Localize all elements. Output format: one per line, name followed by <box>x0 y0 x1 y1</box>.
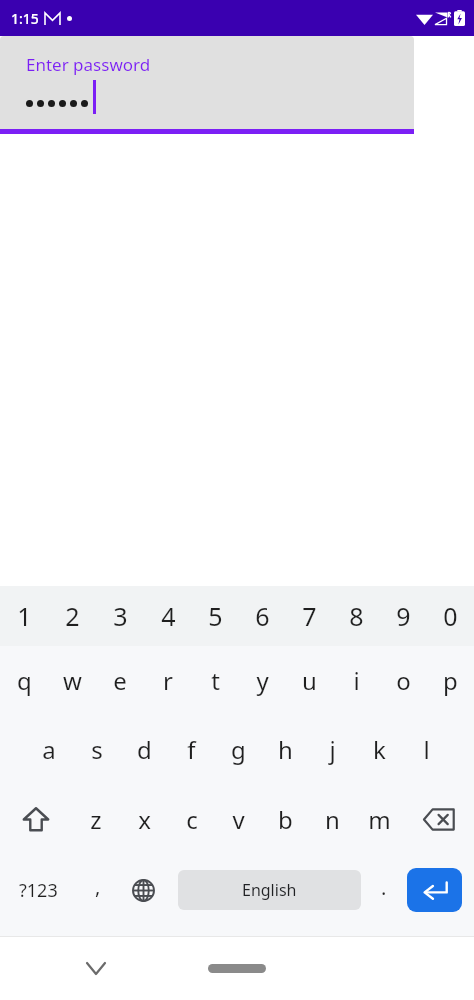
button[interactable]: q <box>0 646 48 714</box>
button[interactable]: 1 <box>0 586 48 646</box>
staticText: v <box>232 803 245 836</box>
button[interactable]: 8 <box>333 586 380 646</box>
staticText: English <box>242 879 297 901</box>
staticText: 0 <box>443 599 458 633</box>
button[interactable]: j <box>309 714 356 784</box>
button[interactable]: x <box>120 784 168 854</box>
button[interactable]: g <box>215 714 262 784</box>
staticText: e <box>113 664 127 697</box>
staticText: o <box>396 664 411 697</box>
staticText: 6 <box>255 599 270 633</box>
button[interactable]: Enter password <box>0 36 414 134</box>
button[interactable]: English <box>178 870 361 910</box>
button[interactable]: ?123 <box>0 854 76 926</box>
staticText: g <box>231 733 246 766</box>
staticText: q <box>17 664 32 697</box>
button[interactable]: n <box>309 784 356 854</box>
staticText: m <box>368 803 391 836</box>
button[interactable]: 4 <box>144 586 192 646</box>
button[interactable]: s <box>73 714 121 784</box>
button[interactable]: m <box>356 784 403 854</box>
staticText: k <box>373 733 386 766</box>
staticText: d <box>137 733 152 766</box>
staticText: f <box>187 733 196 766</box>
button[interactable]: Change keyboard language <box>120 854 166 926</box>
button[interactable]: l <box>403 714 450 784</box>
button[interactable]: 9 <box>380 586 427 646</box>
staticText: c <box>186 803 198 836</box>
staticText: 2 <box>65 599 80 633</box>
button[interactable]: h <box>262 714 309 784</box>
staticText: j <box>329 733 336 766</box>
button[interactable]: 2 <box>48 586 96 646</box>
staticText: 4 <box>161 599 176 633</box>
button[interactable]: Enter <box>407 868 462 912</box>
staticText: l <box>423 733 430 766</box>
button[interactable]: 6 <box>239 586 286 646</box>
staticText: 9 <box>396 599 411 633</box>
staticText: 3 <box>113 599 128 633</box>
staticText: 7 <box>302 599 317 633</box>
button[interactable]: d <box>121 714 168 784</box>
staticText: 5 <box>208 599 223 633</box>
button[interactable]: y <box>239 646 286 714</box>
button[interactable]: r <box>144 646 192 714</box>
button[interactable]: Backspace <box>403 784 474 854</box>
staticText: y <box>256 664 269 697</box>
button[interactable]: c <box>168 784 215 854</box>
staticText: p <box>443 664 458 697</box>
button[interactable]: w <box>48 646 96 714</box>
button[interactable]: o <box>380 646 427 714</box>
button[interactable]: Hide keyboard <box>76 948 116 988</box>
staticText: s <box>91 733 103 766</box>
button[interactable]: , <box>76 854 120 926</box>
staticText: r <box>163 664 173 697</box>
button[interactable]: b <box>262 784 309 854</box>
button[interactable]: v <box>215 784 262 854</box>
button[interactable]: i <box>333 646 380 714</box>
button[interactable]: p <box>427 646 474 714</box>
button[interactable]: z <box>72 784 120 854</box>
button[interactable]: 5 <box>192 586 239 646</box>
button[interactable]: u <box>286 646 333 714</box>
staticText: u <box>302 664 317 697</box>
staticText: , <box>95 873 101 900</box>
button[interactable]: e <box>96 646 144 714</box>
button[interactable]: t <box>192 646 239 714</box>
button[interactable]: Shift <box>0 784 72 854</box>
staticText: n <box>325 803 340 836</box>
staticText: ?123 <box>19 878 58 903</box>
button[interactable]: . <box>361 854 407 926</box>
staticText: b <box>278 803 293 836</box>
staticText: . <box>381 874 387 901</box>
staticText: 1 <box>17 599 32 633</box>
staticText: t <box>211 664 220 697</box>
staticText: 1:15 <box>11 9 39 28</box>
staticText: i <box>353 664 360 697</box>
button[interactable]: Home <box>201 948 273 988</box>
staticText: h <box>278 733 293 766</box>
button[interactable]: a <box>25 714 73 784</box>
button[interactable]: 7 <box>286 586 333 646</box>
button[interactable]: k <box>356 714 403 784</box>
staticText: z <box>90 803 102 836</box>
button[interactable]: 0 <box>427 586 474 646</box>
button[interactable]: f <box>168 714 215 784</box>
staticText: a <box>42 733 56 766</box>
staticText: x <box>138 803 151 836</box>
staticText: Enter password <box>26 53 151 76</box>
staticText: w <box>63 664 82 697</box>
staticText: 8 <box>349 599 364 633</box>
button[interactable]: 3 <box>96 586 144 646</box>
